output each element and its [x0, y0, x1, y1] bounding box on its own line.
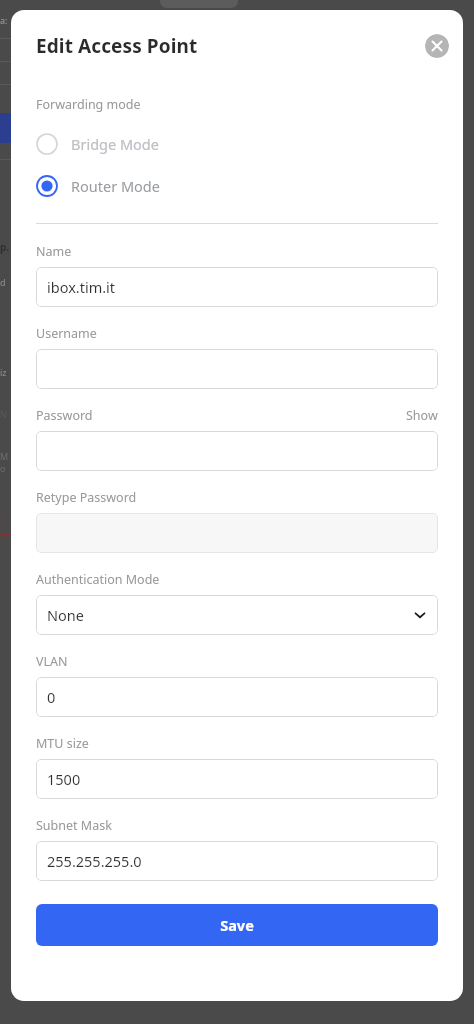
button[interactable]: Router Mode [36, 175, 438, 197]
staticText: MTU size [36, 735, 89, 752]
staticText: ibox.tim.it [47, 277, 116, 297]
button[interactable]: 255.255.255.0 [36, 841, 438, 881]
staticText: Subnet Mask [36, 817, 112, 834]
staticText: Router Mode [71, 176, 160, 196]
staticText: p. [0, 240, 10, 254]
button[interactable]: 1500 [36, 759, 438, 799]
staticText: Bridge Mode [71, 134, 159, 154]
staticText: a: [0, 14, 8, 26]
button[interactable] [36, 349, 438, 389]
staticText: Mo [0, 450, 11, 474]
button[interactable] [36, 431, 438, 471]
button[interactable]: None [36, 595, 438, 635]
staticText: De [0, 504, 11, 528]
button[interactable]: 0 [36, 677, 438, 717]
staticText: None [47, 605, 84, 625]
staticText: 0 [47, 687, 56, 707]
button[interactable]: Show [406, 407, 438, 424]
staticText: Edit Access Point [36, 33, 198, 59]
staticText: Authentication Mode [36, 571, 160, 588]
staticText: Username [36, 325, 97, 342]
staticText: Retype Password [36, 489, 137, 506]
staticText: Save [220, 915, 254, 935]
button[interactable]: Bridge Mode [36, 133, 438, 155]
staticText: Forwarding mode [36, 96, 141, 113]
staticText: N [0, 408, 7, 420]
staticText: Name [36, 243, 72, 260]
button[interactable]: ibox.tim.it [36, 267, 438, 307]
staticText: iz [0, 366, 7, 378]
staticText: Password [36, 407, 93, 424]
staticText: 255.255.255.0 [47, 851, 142, 871]
button[interactable]: Save [36, 904, 438, 946]
staticText: d [0, 276, 6, 288]
staticText: 1500 [47, 769, 81, 789]
staticText: VLAN [36, 653, 68, 670]
button[interactable]: Close [425, 34, 449, 58]
button[interactable] [36, 513, 438, 553]
